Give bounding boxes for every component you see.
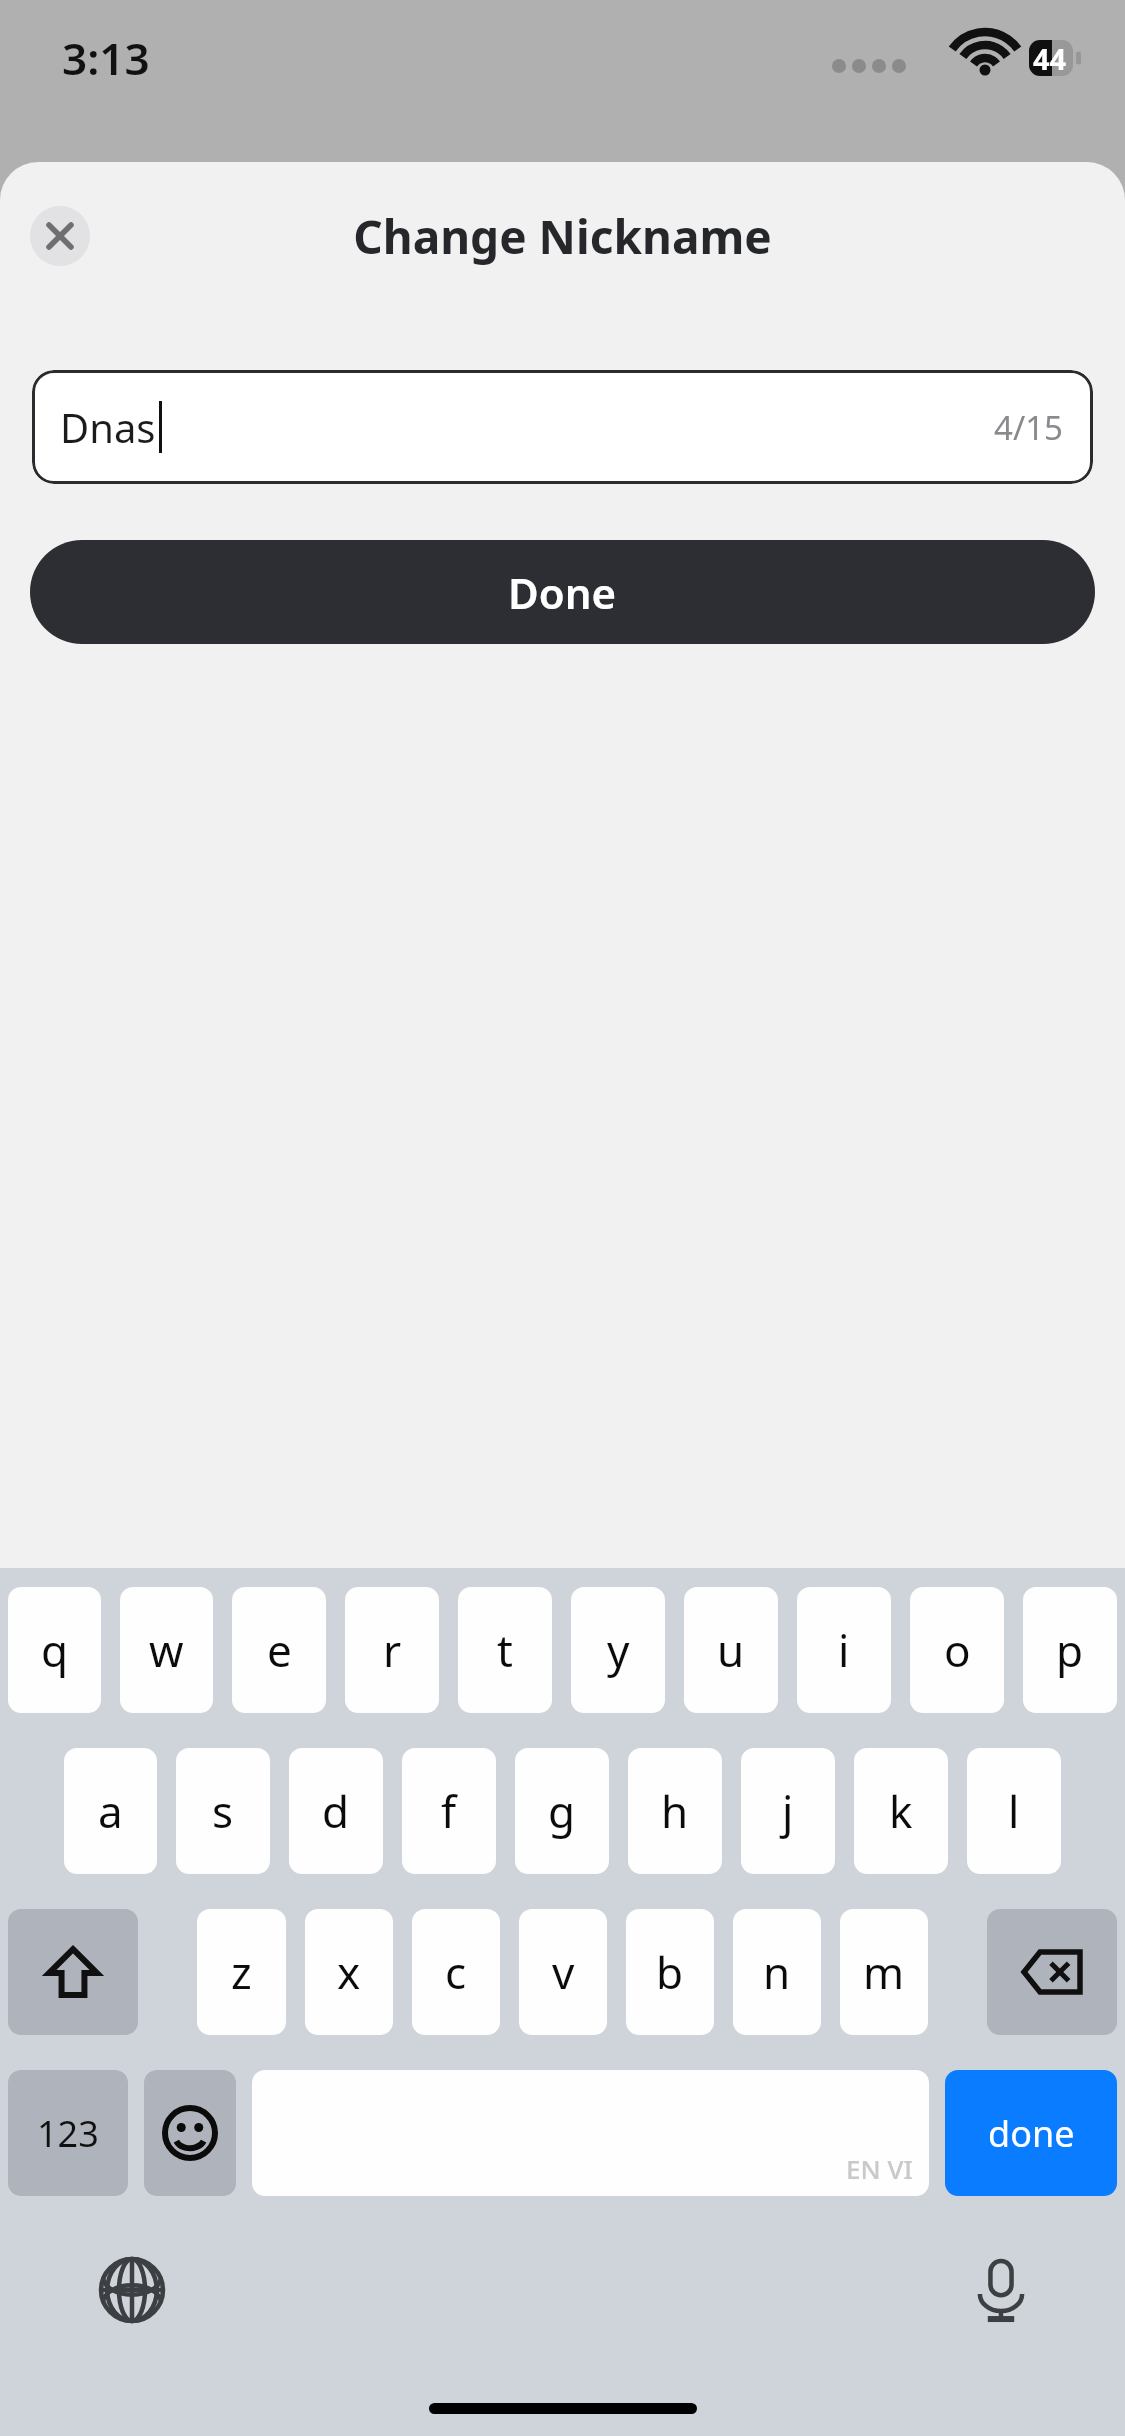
- button[interactable]: x: [305, 1909, 393, 2035]
- staticText: 123: [37, 2109, 99, 2158]
- staticText: k: [889, 1781, 913, 1841]
- staticText: done: [988, 2109, 1075, 2158]
- staticText: Done: [508, 564, 617, 621]
- button[interactable]: r: [345, 1587, 439, 1713]
- staticText: s: [212, 1781, 234, 1841]
- staticText: r: [383, 1620, 402, 1680]
- staticText: f: [441, 1781, 457, 1841]
- button[interactable]: a: [64, 1748, 157, 1874]
- button[interactable]: g: [515, 1748, 609, 1874]
- staticText: m: [863, 1942, 905, 2002]
- button[interactable]: Done: [30, 540, 1095, 644]
- button[interactable]: n: [733, 1909, 821, 2035]
- button[interactable]: Space: [252, 2070, 929, 2196]
- button[interactable]: Dictate: [961, 2250, 1041, 2330]
- button[interactable]: Change language: [92, 2250, 172, 2330]
- button[interactable]: b: [626, 1909, 714, 2035]
- button[interactable]: 123: [8, 2070, 128, 2196]
- button[interactable]: l: [967, 1748, 1061, 1874]
- staticText: o: [944, 1620, 971, 1680]
- button[interactable]: w: [120, 1587, 213, 1713]
- button[interactable]: t: [458, 1587, 552, 1713]
- staticText: u: [717, 1620, 745, 1680]
- button[interactable]: m: [840, 1909, 928, 2035]
- staticText: j: [782, 1781, 794, 1841]
- staticText: e: [267, 1620, 292, 1680]
- button[interactable]: u: [684, 1587, 778, 1713]
- button[interactable]: e: [232, 1587, 326, 1713]
- staticText: t: [497, 1620, 513, 1680]
- staticText: 44: [1033, 39, 1067, 78]
- button[interactable]: d: [289, 1748, 383, 1874]
- button[interactable]: Backspace: [987, 1909, 1117, 2035]
- button[interactable]: h: [628, 1748, 722, 1874]
- staticText: d: [322, 1781, 350, 1841]
- staticText: w: [149, 1620, 184, 1680]
- button[interactable]: j: [741, 1748, 835, 1874]
- button[interactable]: s: [176, 1748, 270, 1874]
- staticText: c: [445, 1942, 467, 2002]
- staticText: l: [1008, 1781, 1020, 1841]
- button[interactable]: Close: [30, 206, 90, 266]
- staticText: p: [1056, 1620, 1084, 1680]
- staticText: Change Nickname: [353, 205, 772, 268]
- button[interactable]: Dnas: [32, 370, 1093, 484]
- button[interactable]: q: [8, 1587, 101, 1713]
- staticText: a: [98, 1781, 123, 1841]
- staticText: z: [231, 1942, 252, 2002]
- button[interactable]: done: [945, 2070, 1117, 2196]
- staticText: x: [337, 1942, 361, 2002]
- button[interactable]: p: [1023, 1587, 1117, 1713]
- staticText: EN VI: [846, 2151, 913, 2186]
- button[interactable]: Emoji: [144, 2070, 236, 2196]
- button[interactable]: o: [910, 1587, 1004, 1713]
- staticText: n: [763, 1942, 791, 2002]
- button[interactable]: c: [412, 1909, 500, 2035]
- staticText: v: [552, 1942, 575, 2002]
- button[interactable]: z: [197, 1909, 286, 2035]
- button[interactable]: Shift: [8, 1909, 138, 2035]
- button[interactable]: f: [402, 1748, 496, 1874]
- button[interactable]: v: [519, 1909, 607, 2035]
- staticText: Dnas: [60, 400, 156, 454]
- button[interactable]: i: [797, 1587, 891, 1713]
- staticText: 4/15: [994, 405, 1063, 450]
- staticText: i: [838, 1620, 850, 1680]
- staticText: 3:13: [62, 28, 150, 88]
- staticText: q: [41, 1620, 69, 1680]
- button[interactable]: k: [854, 1748, 948, 1874]
- staticText: y: [607, 1620, 630, 1680]
- staticText: h: [661, 1781, 689, 1841]
- button[interactable]: y: [571, 1587, 665, 1713]
- staticText: g: [548, 1781, 576, 1841]
- staticText: b: [656, 1942, 684, 2002]
